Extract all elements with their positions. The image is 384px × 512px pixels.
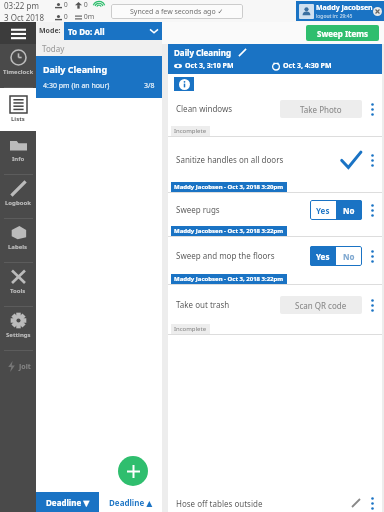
button[interactable]: Add: [118, 456, 148, 486]
staticText: 03:22 pm: [4, 0, 39, 11]
button[interactable]: Edit: [238, 48, 247, 57]
staticText: Yes: [316, 205, 330, 216]
staticText: Maddy Jacobsen: [316, 3, 373, 13]
staticText: Scan QR code: [295, 300, 347, 311]
staticText: logout in: 29:45: [316, 13, 353, 20]
staticText: Deadline ▼: [46, 497, 90, 508]
button[interactable]: Jolt: [0, 351, 36, 381]
button[interactable]: To Do: All: [64, 22, 162, 40]
staticText: Lists: [11, 115, 25, 123]
button[interactable]: Lists: [0, 88, 36, 131]
button[interactable]: Deadline ▼: [36, 492, 99, 512]
button[interactable]: Tools: [0, 263, 36, 306]
button[interactable]: Maddy Jacobsen: [296, 1, 384, 21]
staticText: Take out trash: [176, 299, 230, 310]
staticText: Sweep and mop the floors: [176, 250, 275, 261]
button[interactable]: More options: [367, 248, 377, 264]
button[interactable]: Yes: [310, 200, 336, 220]
button[interactable]: Deadline ▲: [99, 492, 162, 512]
button[interactable]: More options: [367, 152, 377, 168]
staticText: 4:30 pm (in an hour): [43, 81, 110, 91]
staticText: Sanitize handles on all doors: [176, 154, 284, 165]
staticText: Oct 3, 4:30 PM: [283, 61, 332, 71]
button[interactable]: No: [336, 246, 362, 266]
staticText: Jolt: [19, 362, 31, 372]
staticText: Incomplete: [174, 127, 207, 135]
staticText: Sweep Items: [317, 28, 369, 39]
staticText: Daily Cleaning: [174, 47, 232, 58]
staticText: Logbook: [5, 199, 31, 207]
staticText: Clean windows: [176, 103, 233, 114]
staticText: Tools: [10, 287, 26, 295]
staticText: Daily Cleaning: [43, 63, 108, 75]
button[interactable]: Labels: [0, 219, 36, 262]
staticText: Maddy Jacobsen - Oct 3, 2018 3:22pm: [174, 275, 284, 283]
staticText: 3 Oct 2018: [4, 12, 45, 22]
staticText: No: [343, 251, 355, 262]
button[interactable]: Take Photo: [280, 100, 362, 118]
staticText: Settings: [6, 331, 31, 339]
staticText: 3/8: [144, 81, 155, 91]
button[interactable]: No: [336, 200, 362, 220]
staticText: Synced a few seconds ago ✓: [130, 7, 224, 17]
staticText: Labels: [8, 243, 28, 251]
staticText: 0: [62, 12, 68, 22]
button[interactable]: More options: [367, 297, 377, 313]
staticText: Mode:: [39, 26, 61, 36]
staticText: Oct 3, 3:10 PM: [185, 61, 234, 71]
button[interactable]: Scan QR code: [280, 296, 362, 314]
button[interactable]: Yes: [310, 246, 336, 266]
button[interactable]: Daily Cleaning: [36, 56, 162, 98]
button[interactable]: Info: [174, 77, 194, 91]
button[interactable]: Sweep and mop the floors: [168, 237, 382, 285]
staticText: To Do: All: [68, 26, 105, 37]
button[interactable]: Take out trash: [168, 285, 382, 335]
button[interactable]: Settings: [0, 307, 36, 350]
staticText: Info: [12, 155, 25, 163]
button[interactable]: Timeclock: [0, 44, 36, 87]
staticText: 0m: [82, 12, 95, 22]
staticText: Sweep rugs: [176, 204, 220, 215]
staticText: Incomplete: [174, 325, 207, 333]
staticText: Maddy Jacobsen - Oct 3, 2018 3:20pm: [174, 183, 284, 191]
button[interactable]: Sanitize handles on all doors: [168, 137, 382, 193]
button[interactable]: More options: [367, 495, 377, 511]
button[interactable]: Menu: [0, 22, 36, 44]
staticText: Maddy Jacobsen - Oct 3, 2018 3:22pm: [174, 227, 284, 235]
staticText: Hose off tables outside: [176, 498, 263, 509]
staticText: Today: [42, 43, 65, 54]
staticText: Deadline ▲: [109, 497, 153, 508]
button[interactable]: Logout: [373, 7, 382, 16]
button[interactable]: More options: [367, 202, 377, 218]
staticText: No: [343, 205, 355, 216]
button[interactable]: Sweep Items: [306, 25, 379, 41]
staticText: Yes: [316, 251, 330, 262]
staticText: Take Photo: [300, 104, 342, 115]
button[interactable]: Logbook: [0, 175, 36, 218]
button[interactable]: Synced a few seconds ago ✓: [111, 4, 243, 19]
staticText: 0: [62, 0, 68, 10]
staticText: 0: [82, 0, 88, 10]
button[interactable]: Sweep rugs: [168, 193, 382, 237]
button[interactable]: Clean windows: [168, 91, 382, 137]
button[interactable]: Info: [0, 131, 36, 174]
button[interactable]: More options: [367, 101, 377, 117]
staticText: Timeclock: [3, 68, 34, 76]
